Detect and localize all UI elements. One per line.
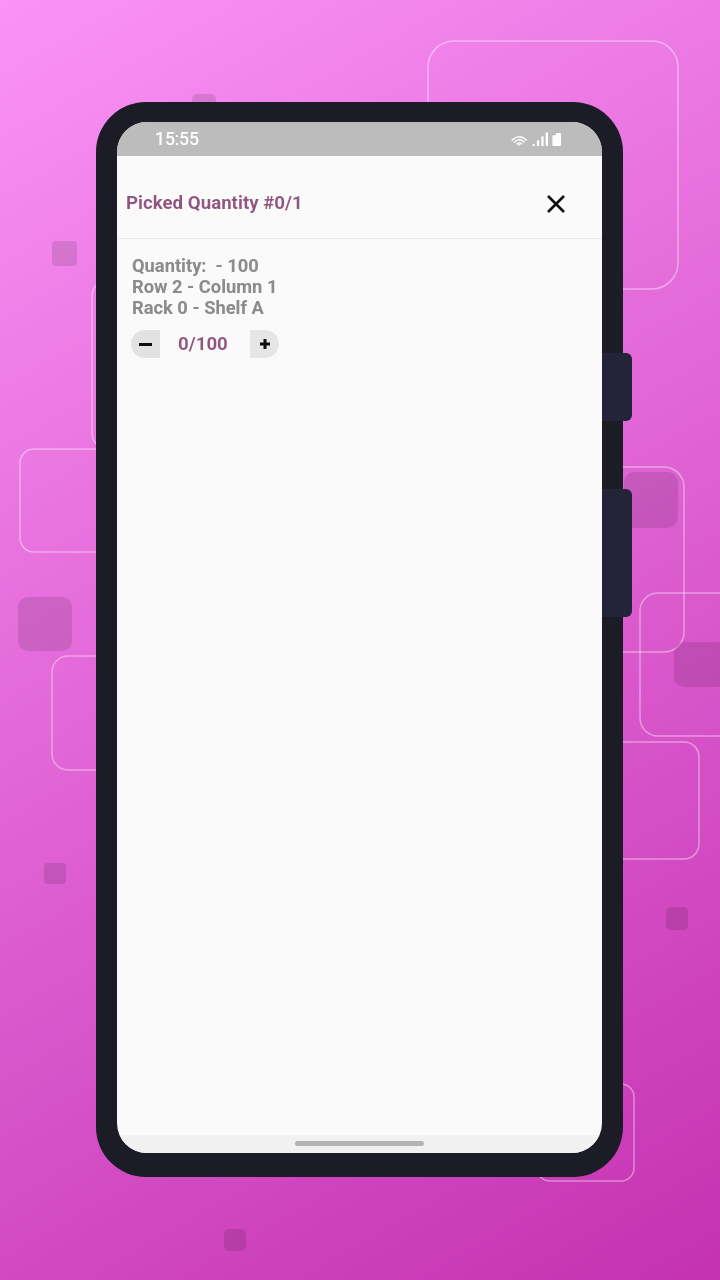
button[interactable]: Close: [537, 185, 575, 223]
button[interactable]: Increase quantity: [250, 330, 279, 358]
staticText: Picked Quantity #0/1: [126, 192, 303, 214]
staticText: 15:55: [155, 129, 199, 150]
staticText: Rack 0 - Shelf A: [132, 297, 264, 318]
staticText: Row 2 - Column 1: [132, 276, 278, 297]
button[interactable]: Decrease quantity: [131, 330, 160, 358]
staticText: 0/100: [178, 333, 228, 355]
staticText: Quantity: - 100: [132, 255, 259, 276]
